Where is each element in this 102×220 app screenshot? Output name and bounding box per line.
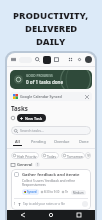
button[interactable]: Notifications (76, 56, 83, 63)
button[interactable]: Menu (10, 56, 17, 63)
button[interactable]: Medium (71, 190, 86, 195)
staticText: Google Calendar Synced (20, 94, 62, 99)
staticText: 8:30 to 9:30 (44, 190, 60, 194)
button[interactable]: Complete task (11, 169, 91, 210)
staticText: Synced (27, 190, 37, 194)
button[interactable]: Today (41, 152, 59, 159)
button[interactable]: All (11, 138, 24, 147)
staticText: Tomorrow (67, 154, 83, 158)
staticText: Search tasks... (20, 128, 44, 133)
button[interactable]: General (11, 162, 91, 167)
staticText: Gather feedback and iterate (22, 172, 80, 178)
button[interactable]: Upload (18, 203, 21, 206)
button[interactable]: Search (34, 56, 41, 63)
staticText: New Task (25, 116, 43, 121)
staticText: Pending (31, 139, 46, 144)
staticText: All (15, 139, 20, 144)
button[interactable]: New Task (17, 114, 46, 122)
button[interactable]: Tomorrow (61, 152, 85, 159)
staticText: High Priority (17, 154, 37, 158)
button[interactable]: Add (11, 116, 15, 120)
button[interactable]: Calendar (53, 56, 60, 63)
staticText: PRODUCTIVITY, (13, 9, 89, 22)
button[interactable]: Done (77, 138, 91, 147)
button[interactable]: Search tasks... (11, 126, 91, 135)
staticText: Done (79, 139, 89, 144)
button[interactable]: High Priority (11, 152, 39, 159)
staticText: DAILY (36, 35, 66, 48)
button[interactable]: Profile (85, 56, 92, 63)
button[interactable]: Overdue (52, 138, 72, 147)
button[interactable]: Options (82, 201, 88, 207)
staticText: General (17, 162, 33, 167)
staticText: Tap to add your notes or a file (23, 202, 66, 206)
staticText: Responsiveness (22, 183, 46, 187)
staticText: Medium (73, 191, 84, 195)
button[interactable]: Apps (67, 56, 74, 63)
button[interactable]: More filters (85, 152, 91, 159)
staticText: Tasks (11, 104, 28, 112)
button[interactable]: Synced (22, 189, 39, 195)
button[interactable]: GOOD PROGRESS (10, 70, 92, 89)
button[interactable]: Complete task (14, 172, 19, 177)
staticText: 1 (37, 163, 39, 167)
staticText: Overdue (54, 139, 70, 144)
button[interactable]: Google Calendar Synced (10, 92, 92, 101)
button[interactable]: Back (19, 211, 27, 219)
button[interactable]: Recents (75, 211, 83, 219)
staticText: 1h (65, 190, 69, 194)
staticText: Collect 5 users' feedback and refine onb… (22, 179, 88, 183)
staticText: GOOD PROGRESS (26, 74, 53, 78)
button[interactable]: Home (47, 211, 55, 219)
staticText: 1 (14, 202, 16, 206)
staticText: DELIVERED (25, 22, 78, 35)
button[interactable]: Pending (29, 138, 48, 147)
button[interactable]: Tasks (43, 56, 51, 64)
staticText: Today (47, 154, 57, 158)
staticText: 0 of 1 tasks done (26, 79, 64, 85)
